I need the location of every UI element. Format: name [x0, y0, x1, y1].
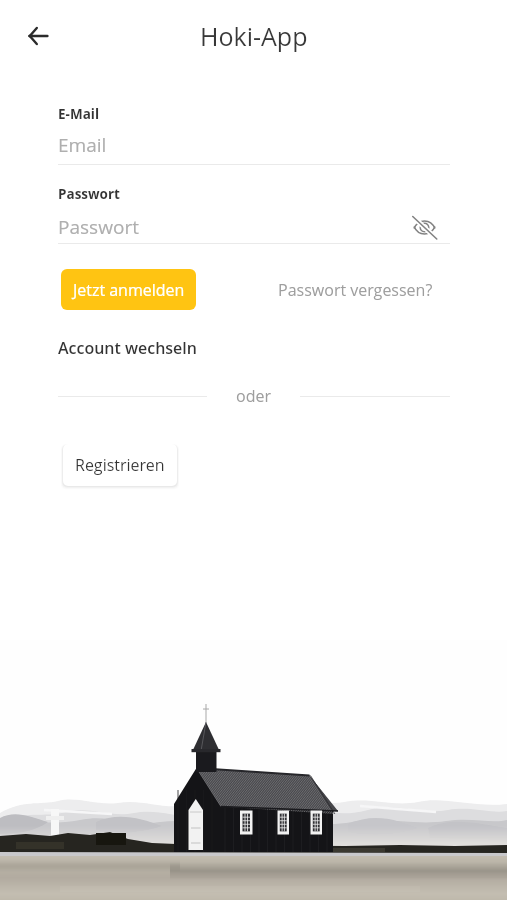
- staticText: Passwort vergessen?: [278, 279, 433, 301]
- button[interactable]: Registrieren: [63, 444, 177, 486]
- button[interactable]: Show password: [409, 212, 439, 242]
- staticText: Hoki-App: [200, 19, 308, 53]
- button[interactable]: Passwort vergessen?: [193, 279, 450, 301]
- staticText: Passwort: [58, 214, 420, 240]
- button[interactable]: Account wechseln: [58, 337, 197, 359]
- staticText: E-Mail: [58, 105, 100, 123]
- staticText: oder: [236, 385, 271, 407]
- staticText: Email: [58, 132, 107, 158]
- staticText: Passwort: [58, 185, 120, 203]
- button[interactable]: Jetzt anmelden: [61, 269, 196, 310]
- button[interactable]: Back: [7, 5, 69, 67]
- staticText: Account wechseln: [58, 337, 197, 359]
- staticText: Registrieren: [75, 454, 165, 476]
- staticText: Jetzt anmelden: [73, 279, 185, 301]
